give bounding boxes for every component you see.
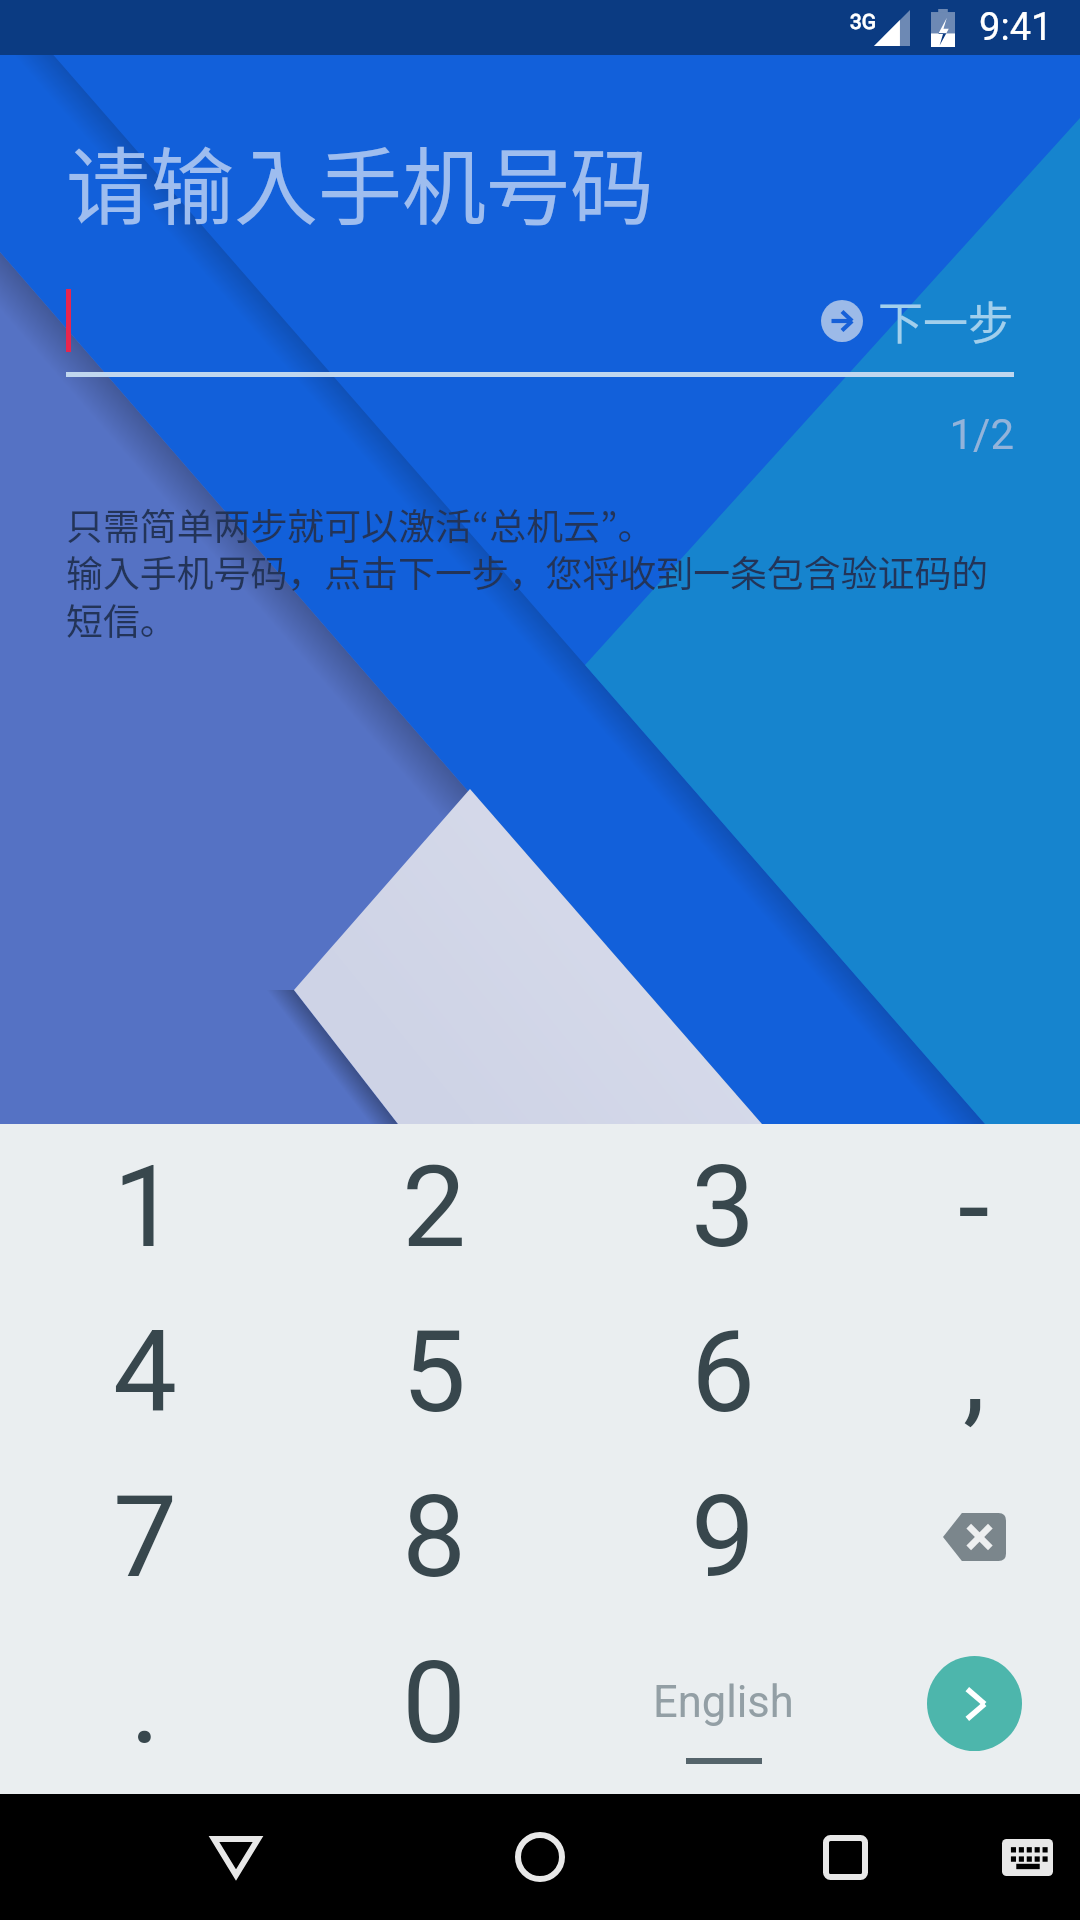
staticText: 9 bbox=[691, 1470, 756, 1604]
staticText: 4 bbox=[113, 1305, 178, 1439]
staticText: 只需简单两步就可以激活“总机云”。 输入手机号码，点击下一步，您将收到一条包含验… bbox=[66, 497, 1008, 646]
staticText: 8 bbox=[402, 1470, 467, 1604]
button[interactable]: 8 bbox=[290, 1454, 578, 1620]
staticText: - bbox=[958, 1140, 990, 1274]
staticText: 6 bbox=[691, 1305, 756, 1439]
button[interactable]: Recents bbox=[773, 1794, 917, 1920]
button[interactable]: 7 bbox=[0, 1454, 290, 1620]
button[interactable]: - bbox=[868, 1124, 1080, 1289]
button[interactable]: Switch keyboard bbox=[967, 1797, 1080, 1917]
button[interactable]: 2 bbox=[290, 1124, 578, 1289]
staticText: 2 bbox=[402, 1140, 467, 1274]
button[interactable]: 3 bbox=[578, 1124, 868, 1289]
button[interactable]: 9 bbox=[578, 1454, 868, 1620]
staticText: 3G bbox=[850, 10, 877, 35]
staticText: 0 bbox=[402, 1636, 467, 1770]
staticText: 3 bbox=[691, 1140, 756, 1274]
button[interactable]: Backspace bbox=[868, 1454, 1080, 1620]
button[interactable]: Back bbox=[164, 1794, 308, 1920]
button[interactable]: . bbox=[0, 1620, 290, 1786]
button[interactable]: , bbox=[868, 1289, 1080, 1454]
staticText: English bbox=[653, 1677, 794, 1728]
button[interactable]: 4 bbox=[0, 1289, 290, 1454]
staticText: . bbox=[130, 1636, 161, 1770]
button[interactable]: 6 bbox=[578, 1289, 868, 1454]
button[interactable]: Next bbox=[868, 1620, 1080, 1786]
staticText: 1 bbox=[113, 1140, 178, 1274]
button[interactable]: 1 bbox=[0, 1124, 290, 1289]
staticText: , bbox=[963, 1305, 986, 1439]
staticText: 5 bbox=[402, 1305, 467, 1439]
staticText: 请输入手机号码 bbox=[66, 121, 655, 243]
staticText: 下一步 bbox=[878, 288, 1014, 353]
button[interactable]: English bbox=[578, 1620, 868, 1786]
button[interactable]: 下一步 bbox=[821, 288, 1014, 353]
button[interactable]: 0 bbox=[290, 1620, 578, 1786]
button[interactable]: 5 bbox=[290, 1289, 578, 1454]
button[interactable]: Home bbox=[468, 1794, 612, 1920]
staticText: 1/2 bbox=[0, 410, 1014, 459]
staticText: 7 bbox=[113, 1470, 178, 1604]
staticText: 9:41 bbox=[979, 5, 1053, 50]
